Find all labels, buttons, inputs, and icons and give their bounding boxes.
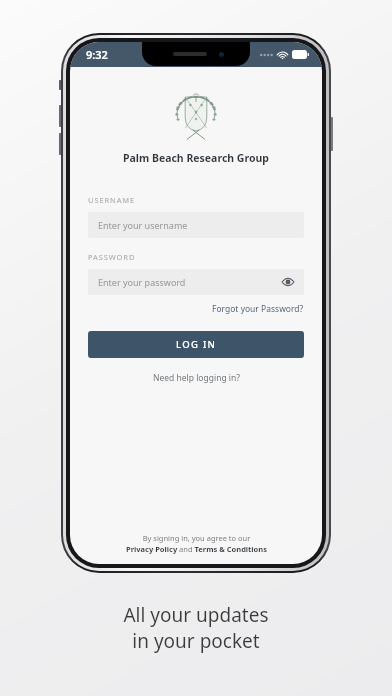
- button[interactable]: Enter your username: [88, 212, 304, 238]
- button[interactable]: Need help logging in?: [153, 372, 240, 384]
- staticText: 9:32: [86, 47, 108, 62]
- staticText: All your updates in your pocket: [123, 602, 269, 653]
- button[interactable]: Enter your password: [88, 269, 304, 295]
- staticText: By signing in, you agree to our Privacy …: [126, 533, 267, 554]
- staticText: LOG IN: [176, 338, 217, 351]
- staticText: Need help logging in?: [153, 372, 240, 384]
- staticText: USERNAME: [88, 195, 136, 205]
- staticText: Forgot your Password?: [212, 303, 304, 315]
- staticText: Enter your username: [98, 219, 188, 231]
- staticText: Enter your password: [98, 276, 186, 288]
- staticText: Palm Beach Research Group: [123, 151, 269, 165]
- button[interactable]: LOG IN: [88, 331, 304, 358]
- staticText: PASSWORD: [88, 252, 136, 262]
- button[interactable]: Forgot your Password?: [212, 303, 304, 315]
- button[interactable]: Show password: [279, 273, 297, 291]
